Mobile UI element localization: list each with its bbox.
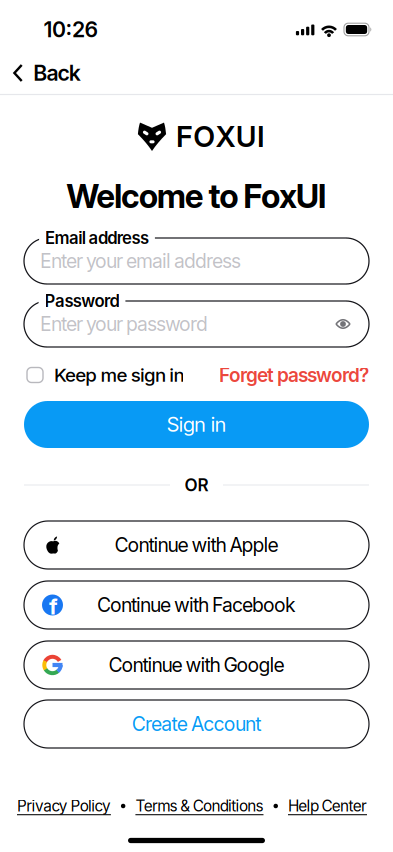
- staticText: Keep me sign in: [54, 364, 184, 386]
- staticText: F: [176, 119, 193, 154]
- button[interactable]: f: [24, 581, 369, 629]
- staticText: Create Account: [132, 712, 261, 736]
- button[interactable]: Keep me sign in: [27, 364, 184, 386]
- staticText: Password: [45, 291, 119, 311]
- staticText: 10:26: [43, 17, 98, 42]
- staticText: U: [236, 119, 257, 154]
- button[interactable]: Sign in: [24, 401, 369, 448]
- staticText: X: [215, 119, 235, 154]
- button[interactable]: Continue with Google: [24, 641, 369, 689]
- button[interactable]: Terms & Conditions: [135, 797, 263, 815]
- staticText: f: [49, 593, 58, 620]
- staticText: Privacy Policy: [17, 797, 111, 815]
- staticText: Enter your email address: [40, 249, 241, 273]
- button[interactable]: Back: [13, 60, 81, 86]
- staticText: Email address: [45, 228, 149, 248]
- button[interactable]: Help Center: [288, 797, 367, 815]
- staticText: I: [257, 119, 265, 154]
- button[interactable]: Forget password?: [219, 363, 369, 386]
- staticText: Continue with Apple: [114, 533, 278, 557]
- staticText: Enter your password: [40, 312, 208, 336]
- staticText: OR: [184, 475, 208, 495]
- button[interactable]: Privacy Policy: [17, 797, 111, 815]
- staticText: O: [193, 119, 215, 154]
- staticText: Continue with Google: [108, 653, 284, 677]
- staticText: Forget password?: [219, 363, 369, 386]
- button[interactable]: Show password: [335, 317, 353, 331]
- staticText: Help Center: [288, 797, 367, 815]
- staticText: Continue with Facebook: [97, 593, 296, 617]
- button[interactable]: Create Account: [24, 700, 369, 748]
- staticText: Terms & Conditions: [135, 797, 263, 815]
- staticText: Welcome to FoxUI: [66, 176, 327, 216]
- button[interactable]: Continue with Apple: [24, 521, 369, 569]
- staticText: Back: [33, 60, 81, 86]
- staticText: Sign in: [166, 412, 227, 437]
